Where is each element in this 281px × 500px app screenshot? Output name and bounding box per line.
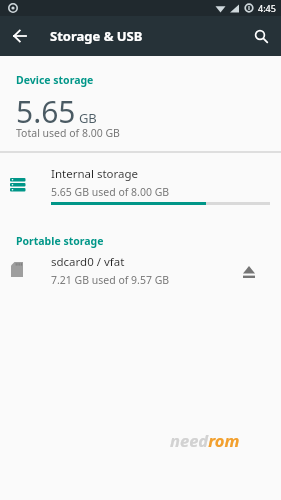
staticText: Storage & USB [50, 27, 143, 45]
staticText: 5.65 GB used of 8.00 GB [51, 185, 170, 199]
button[interactable] [241, 16, 281, 56]
button[interactable]: sdcard0 / vfat [0, 246, 281, 290]
staticText: 5.65 GB [16, 91, 97, 132]
staticText: Internal storage [51, 166, 139, 182]
staticText: needrom [170, 429, 240, 451]
staticText: sdcard0 / vfat [51, 254, 125, 270]
staticText: 4:45 [258, 2, 276, 14]
staticText: 7.21 GB used of 9.57 GB [51, 273, 170, 287]
staticText: Portable storage [16, 234, 104, 248]
button[interactable] [0, 16, 40, 56]
staticText: Device storage [16, 73, 94, 87]
button[interactable]: Internal storage [0, 153, 281, 215]
staticText: Total used of 8.00 GB [16, 126, 120, 140]
button[interactable] [229, 252, 269, 292]
